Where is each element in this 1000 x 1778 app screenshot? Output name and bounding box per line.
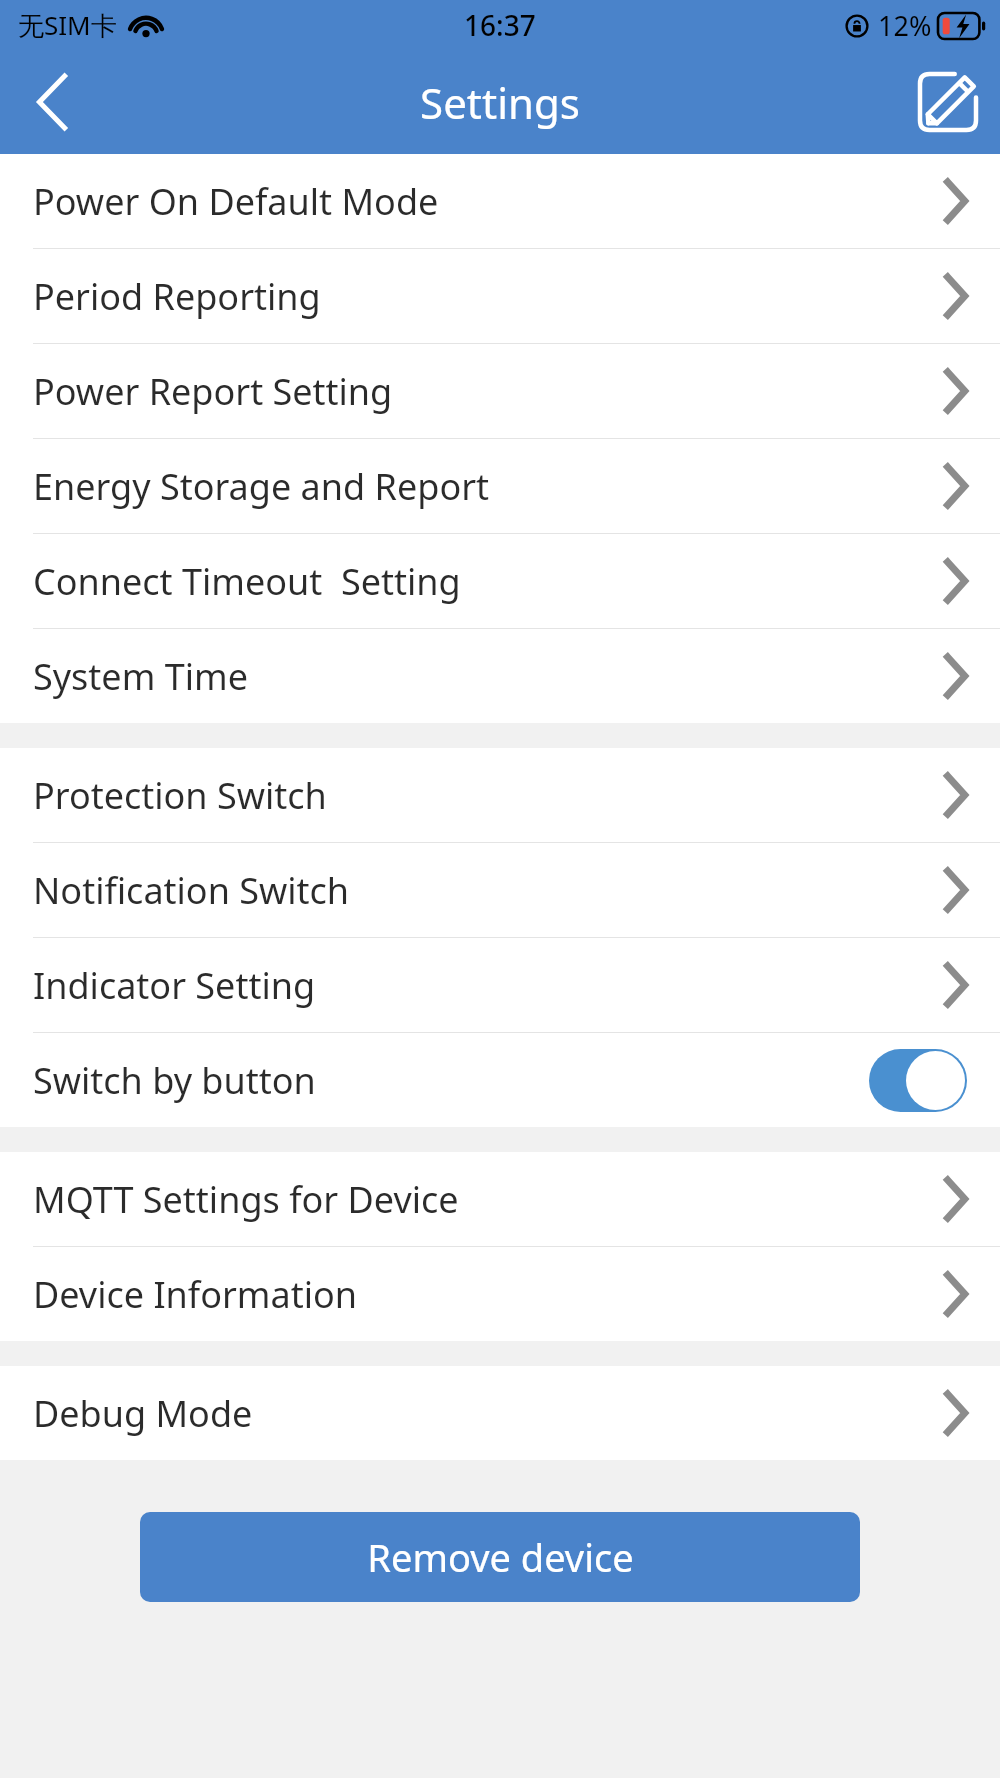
button[interactable]: Remove device bbox=[140, 1512, 860, 1602]
staticText: System Time bbox=[33, 652, 248, 701]
staticText: Indicator Setting bbox=[33, 961, 316, 1010]
button[interactable]: System Time bbox=[0, 629, 1000, 723]
button[interactable]: Protection Switch bbox=[0, 748, 1000, 842]
button[interactable]: Period Reporting bbox=[0, 249, 1000, 343]
staticText: Debug Mode bbox=[33, 1389, 253, 1438]
staticText: Power On Default Mode bbox=[33, 177, 439, 226]
button[interactable]: Edit bbox=[896, 50, 1000, 154]
staticText: Switch by button bbox=[33, 1056, 316, 1105]
button[interactable]: Switch by button bbox=[0, 1033, 1000, 1127]
staticText: 12% bbox=[878, 7, 932, 44]
button[interactable]: Indicator Setting bbox=[0, 938, 1000, 1032]
button[interactable]: MQTT Settings for Device bbox=[0, 1152, 1000, 1246]
button[interactable]: Switch by button toggle bbox=[869, 1049, 967, 1112]
button[interactable]: Debug Mode bbox=[0, 1366, 1000, 1460]
staticText: Energy Storage and Report bbox=[33, 462, 490, 511]
staticText: Remove device bbox=[367, 1531, 634, 1583]
staticText: Notification Switch bbox=[33, 866, 350, 915]
staticText: Period Reporting bbox=[33, 272, 321, 321]
button[interactable]: Energy Storage and Report bbox=[0, 439, 1000, 533]
staticText: Protection Switch bbox=[33, 771, 327, 820]
staticText: Settings bbox=[420, 74, 580, 131]
button[interactable]: Back bbox=[0, 50, 104, 154]
staticText: Power Report Setting bbox=[33, 367, 393, 416]
staticText: MQTT Settings for Device bbox=[33, 1175, 459, 1224]
staticText: Device Information bbox=[33, 1270, 358, 1319]
button[interactable]: Power On Default Mode bbox=[0, 154, 1000, 248]
staticText: Connect Timeout Setting bbox=[33, 557, 461, 606]
button[interactable]: Power Report Setting bbox=[0, 344, 1000, 438]
button[interactable]: Device Information bbox=[0, 1247, 1000, 1341]
staticText: 无SIM卡 bbox=[18, 7, 117, 43]
button[interactable]: Connect Timeout Setting bbox=[0, 534, 1000, 628]
button[interactable]: Notification Switch bbox=[0, 843, 1000, 937]
staticText: 16:37 bbox=[464, 6, 536, 44]
